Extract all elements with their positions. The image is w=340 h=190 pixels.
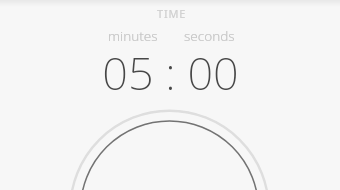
other: Start timer [0, 0, 340, 190]
staticText: 05 : 00 [102, 42, 239, 103]
staticText: minutes [108, 27, 158, 45]
button[interactable] [80, 121, 259, 190]
staticText: seconds [184, 27, 235, 45]
staticText: TIME [157, 6, 187, 21]
button[interactable]: Set minutes [100, 28, 160, 90]
button[interactable]: Set seconds [183, 28, 243, 90]
